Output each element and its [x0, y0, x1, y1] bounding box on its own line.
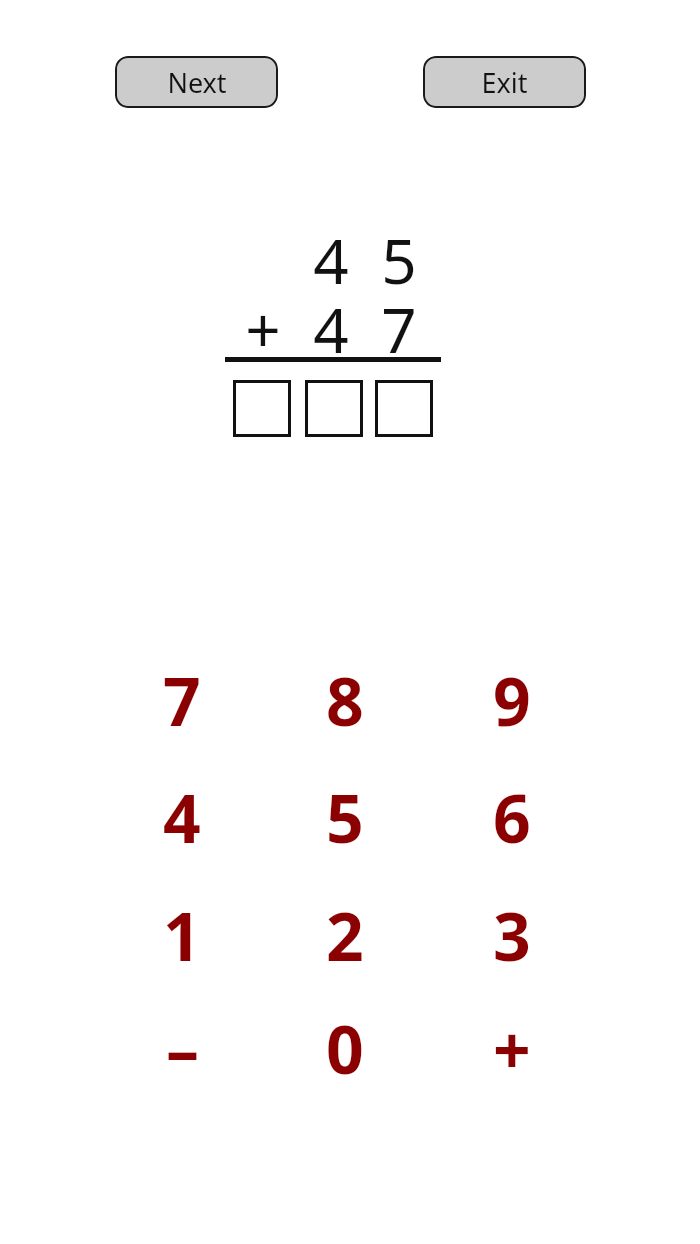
staticText: 4: [313, 218, 349, 290]
button[interactable]: Exit: [423, 56, 586, 108]
staticText: 7: [163, 655, 201, 745]
button[interactable]: Plus: [457, 998, 567, 1098]
staticText: Next: [167, 64, 227, 101]
staticText: 1: [163, 890, 201, 980]
staticText: 2: [326, 890, 364, 980]
staticText: 4: [163, 772, 201, 862]
staticText: 7: [381, 287, 417, 359]
staticText: 9: [493, 655, 531, 745]
button[interactable]: Seven: [127, 650, 237, 750]
button[interactable]: Eight: [290, 650, 400, 750]
staticText: 8: [326, 655, 364, 745]
staticText: +: [493, 1003, 531, 1093]
button[interactable]: Five: [290, 767, 400, 867]
button[interactable]: [233, 380, 291, 437]
staticText: 5: [326, 772, 364, 862]
staticText: 0: [326, 1003, 364, 1093]
staticText: 3: [493, 890, 531, 980]
button[interactable]: [375, 380, 433, 437]
staticText: –: [166, 1003, 199, 1093]
button[interactable]: Three: [457, 885, 567, 985]
staticText: 6: [493, 772, 531, 862]
staticText: 5: [381, 218, 417, 290]
button[interactable]: Four: [127, 767, 237, 867]
staticText: 4: [313, 287, 349, 359]
button[interactable]: Nine: [457, 650, 567, 750]
button[interactable]: One: [127, 885, 237, 985]
button[interactable]: Next: [115, 56, 278, 108]
button[interactable]: [305, 380, 363, 437]
staticText: +: [245, 287, 281, 359]
button[interactable]: Two: [290, 885, 400, 985]
button[interactable]: Minus: [127, 998, 237, 1098]
button[interactable]: Zero: [290, 998, 400, 1098]
staticText: Exit: [481, 64, 528, 101]
button[interactable]: Six: [457, 767, 567, 867]
